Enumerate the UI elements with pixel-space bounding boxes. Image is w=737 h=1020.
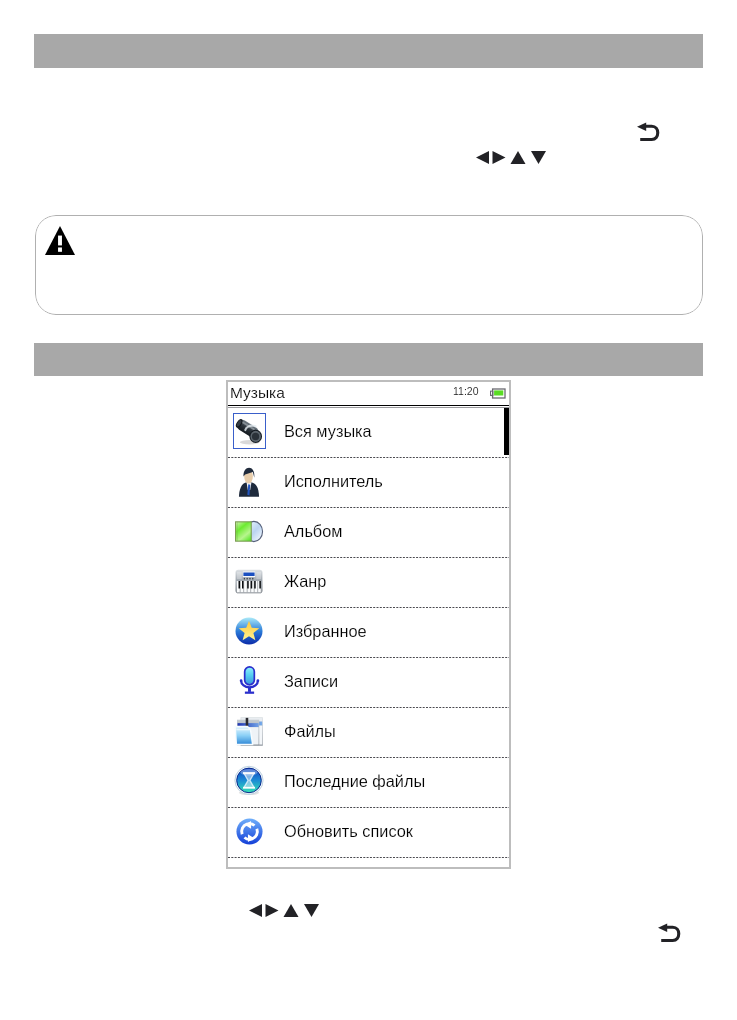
staticText: Жанр xyxy=(284,572,327,590)
staticText: Альбом xyxy=(284,522,343,540)
button[interactable]: Избранное xyxy=(228,608,509,657)
button[interactable]: Записи xyxy=(228,658,509,707)
button[interactable]: Альбом xyxy=(228,508,509,557)
staticText: Исполнитель xyxy=(284,472,383,490)
button[interactable]: Файлы xyxy=(228,708,509,757)
button[interactable]: Обновить список xyxy=(228,808,509,857)
staticText: 11:20 xyxy=(453,385,479,397)
staticText: Последние файлы xyxy=(284,772,426,790)
other: Back xyxy=(658,923,681,942)
staticText: Избранное xyxy=(284,622,367,640)
button[interactable]: Последние файлы xyxy=(228,758,509,807)
staticText: Музыка xyxy=(230,384,285,401)
staticText: Файлы xyxy=(284,722,336,740)
other: Back xyxy=(637,122,660,141)
button[interactable]: Исполнитель xyxy=(228,458,509,507)
staticText: Вся музыка xyxy=(284,422,372,440)
button[interactable]: Жанр xyxy=(228,558,509,607)
staticText: Обновить список xyxy=(284,822,413,840)
button[interactable]: Вся музыка xyxy=(228,408,509,457)
staticText: Записи xyxy=(284,672,339,690)
